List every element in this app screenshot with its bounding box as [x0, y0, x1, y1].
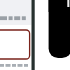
button[interactable]: Promo code field [0, 30, 30, 59]
